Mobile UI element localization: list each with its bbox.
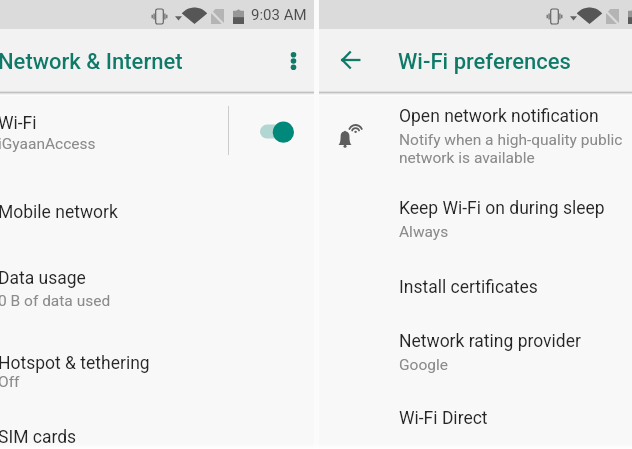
staticText: iGyaanAccess [0,135,96,153]
staticText: Wi-Fi preferences [398,49,571,75]
button[interactable]: Open network notification [319,106,632,156]
staticText: Open network notification [399,106,599,127]
button[interactable]: Install certificates [319,277,632,303]
staticText: Off [0,373,20,391]
staticText: Mobile network [0,202,118,223]
staticText: Always [399,223,449,241]
button[interactable]: Keep Wi-Fi on during sleep [319,198,632,248]
button[interactable]: Hotspot & tethering [0,353,314,401]
staticText: Data usage [0,268,86,289]
button[interactable]: Data usage [0,268,314,316]
staticText: Network rating provider [399,331,581,352]
button[interactable]: Wi-Fi [0,100,314,162]
button[interactable]: Mobile network [0,202,314,228]
button[interactable]: Back [334,44,366,76]
staticText: 9:03 AM [251,6,307,24]
staticText: Install certificates [399,277,538,298]
staticText: Notify when a high-quality public networ… [399,131,623,167]
staticText: Wi-Fi Direct [399,408,488,429]
staticText: Wi-Fi [0,113,37,134]
staticText: Keep Wi-Fi on during sleep [399,198,605,219]
other: Notification icon [338,122,360,149]
staticText: Hotspot & tethering [0,353,150,374]
staticText: Network & Internet [0,49,183,75]
staticText: SIM cards [0,427,77,448]
button[interactable]: Network rating provider [319,331,632,381]
button[interactable]: More options [277,45,309,77]
button[interactable]: Wi-Fi switch [252,113,306,151]
staticText: Google [399,356,448,374]
button[interactable]: SIM cards [0,427,314,449]
button[interactable]: Wi-Fi Direct [319,408,632,434]
staticText: 0 B of data used [0,292,111,310]
